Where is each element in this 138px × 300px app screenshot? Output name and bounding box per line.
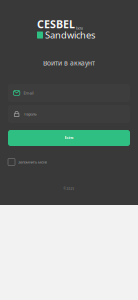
- staticText: Войти: [64, 136, 73, 140]
- staticText: © 2025: [63, 187, 74, 191]
- staticText: beta: [76, 25, 83, 31]
- button[interactable]: Войти: [8, 130, 130, 146]
- staticText: Пароль: [23, 111, 36, 117]
- staticText: CESBEL: [37, 17, 75, 31]
- button[interactable]: Запомнить меня: [8, 158, 130, 166]
- staticText: Войти в аккаунт: [43, 59, 95, 67]
- button[interactable]: Пароль: [8, 105, 130, 123]
- staticText: Запомнить меня: [18, 159, 47, 165]
- staticText: Email: [23, 90, 33, 96]
- button[interactable]: Email: [8, 84, 130, 102]
- staticText: Sandwiches: [45, 29, 95, 41]
